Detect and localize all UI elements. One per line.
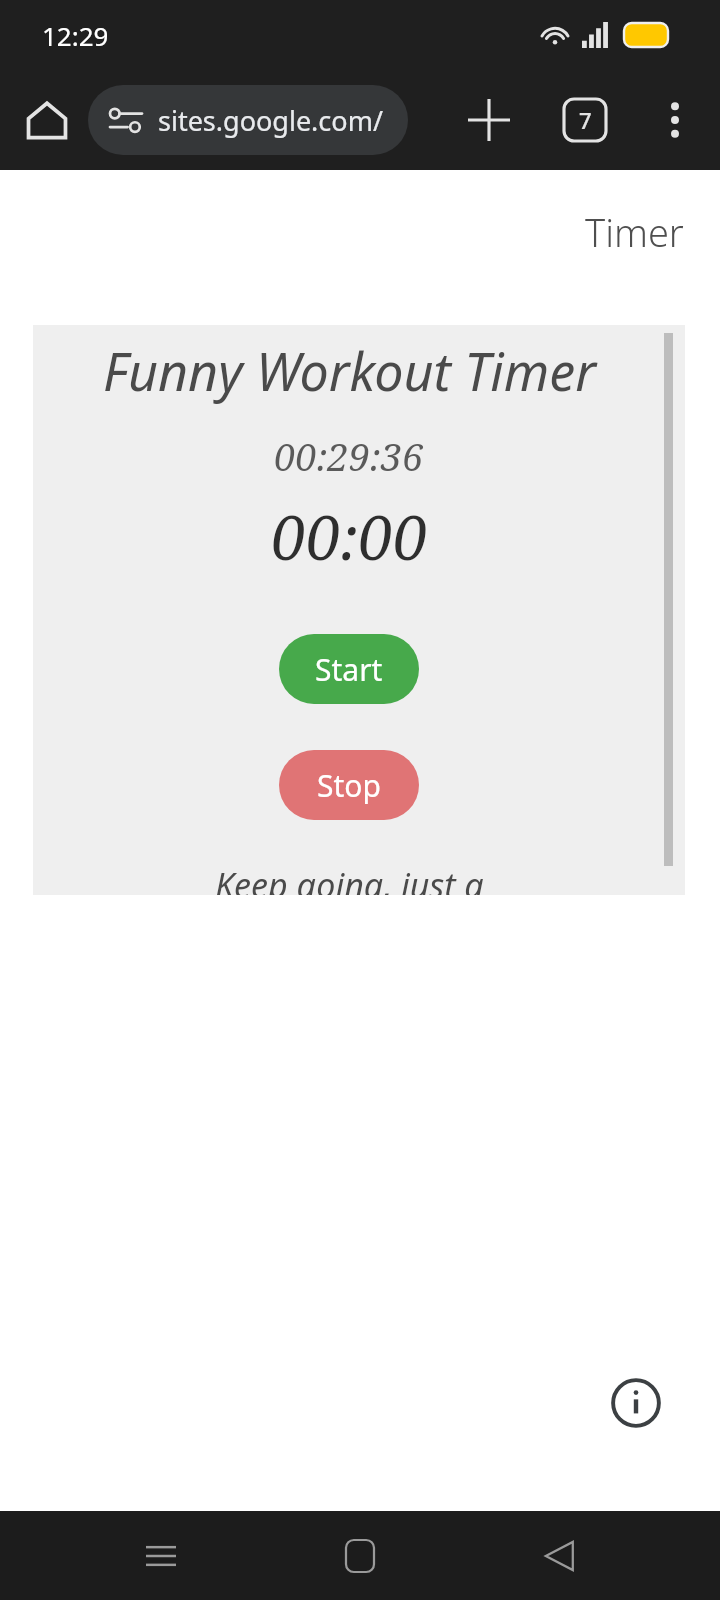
staticText: Funny Workout Timer: [103, 335, 596, 406]
button[interactable]: Home: [14, 87, 80, 153]
button[interactable]: New tab: [458, 89, 520, 151]
staticText: 00:00: [271, 494, 428, 578]
staticText: Start: [315, 649, 383, 690]
staticText: 7: [579, 105, 592, 135]
staticText: Timer: [585, 206, 684, 258]
staticText: Stop: [317, 765, 381, 806]
button[interactable]: Home: [322, 1518, 398, 1594]
button[interactable]: sites.google.com/: [88, 85, 408, 155]
staticText: 00:29:36: [274, 430, 424, 482]
button[interactable]: Start: [279, 634, 419, 704]
button[interactable]: More options: [644, 89, 706, 151]
staticText: Keep going, just a: [215, 862, 484, 895]
button[interactable]: Tabs: 7: [554, 89, 616, 151]
button[interactable]: Stop: [279, 750, 419, 820]
staticText: sites.google.com/: [158, 102, 383, 139]
button[interactable]: Back: [521, 1518, 597, 1594]
button[interactable]: Recent apps: [123, 1518, 199, 1594]
staticText: 12:29: [42, 18, 109, 53]
button[interactable]: Information: [606, 1373, 666, 1433]
